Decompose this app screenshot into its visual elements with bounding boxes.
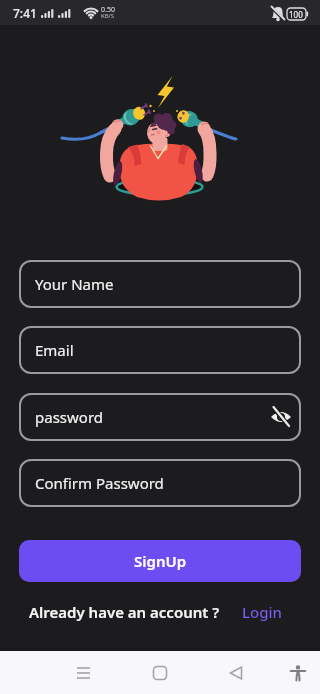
button[interactable] [60, 651, 108, 694]
staticText: password [35, 407, 103, 427]
button[interactable]: Confirm Password [19, 459, 301, 507]
button[interactable]: password [19, 393, 301, 441]
button[interactable]: Your Name [19, 260, 301, 308]
staticText: 100 [289, 9, 303, 20]
button[interactable] [276, 651, 320, 694]
staticText: 0.50 [101, 5, 115, 15]
staticText: SignUp [134, 551, 187, 571]
staticText: KB/S [101, 12, 115, 20]
button[interactable]: Email [19, 326, 301, 374]
staticText: Already have an account ? [29, 602, 220, 622]
staticText: Confirm Password [35, 473, 164, 493]
button[interactable]: SignUp [19, 540, 301, 582]
button[interactable] [212, 651, 260, 694]
button[interactable]: Login [242, 602, 282, 622]
button[interactable] [136, 651, 184, 694]
staticText: 7:41 [13, 5, 37, 21]
staticText: Email [35, 340, 74, 360]
staticText: Login [242, 602, 282, 622]
staticText: Your Name [35, 274, 114, 294]
